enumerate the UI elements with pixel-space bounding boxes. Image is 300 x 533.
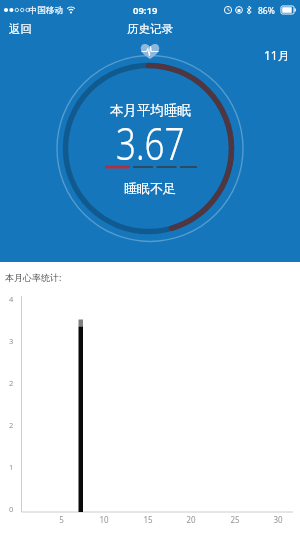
staticText: 0 bbox=[9, 504, 14, 514]
staticText: 本月平均睡眠 bbox=[110, 102, 191, 119]
staticText: 2 bbox=[9, 420, 14, 430]
staticText: 2 bbox=[9, 378, 14, 388]
staticText: 15 bbox=[143, 514, 153, 525]
button[interactable]: 返回 bbox=[5, 21, 28, 35]
staticText: 86% bbox=[258, 5, 275, 17]
staticText: 25 bbox=[230, 514, 240, 525]
button[interactable]: 历史记录 bbox=[127, 22, 173, 36]
staticText: 20 bbox=[186, 514, 196, 525]
button[interactable]: 11月 bbox=[260, 45, 286, 61]
staticText: 1 bbox=[9, 462, 14, 472]
staticText: 3 bbox=[9, 336, 14, 346]
staticText: 睡眠不足 bbox=[124, 180, 176, 196]
staticText: 历史记录 bbox=[127, 22, 173, 36]
staticText: 中国移动 bbox=[29, 5, 63, 16]
staticText: 10 bbox=[99, 514, 109, 525]
staticText: 4 bbox=[9, 294, 14, 304]
staticText: 3.67 bbox=[116, 114, 185, 173]
staticText: 30 bbox=[273, 514, 283, 525]
staticText: 返回 bbox=[9, 22, 32, 36]
staticText: 11月 bbox=[264, 47, 290, 63]
staticText: 本月心率统计: bbox=[5, 271, 62, 283]
staticText: 09:19 bbox=[133, 4, 158, 17]
staticText: 5 bbox=[59, 514, 64, 525]
